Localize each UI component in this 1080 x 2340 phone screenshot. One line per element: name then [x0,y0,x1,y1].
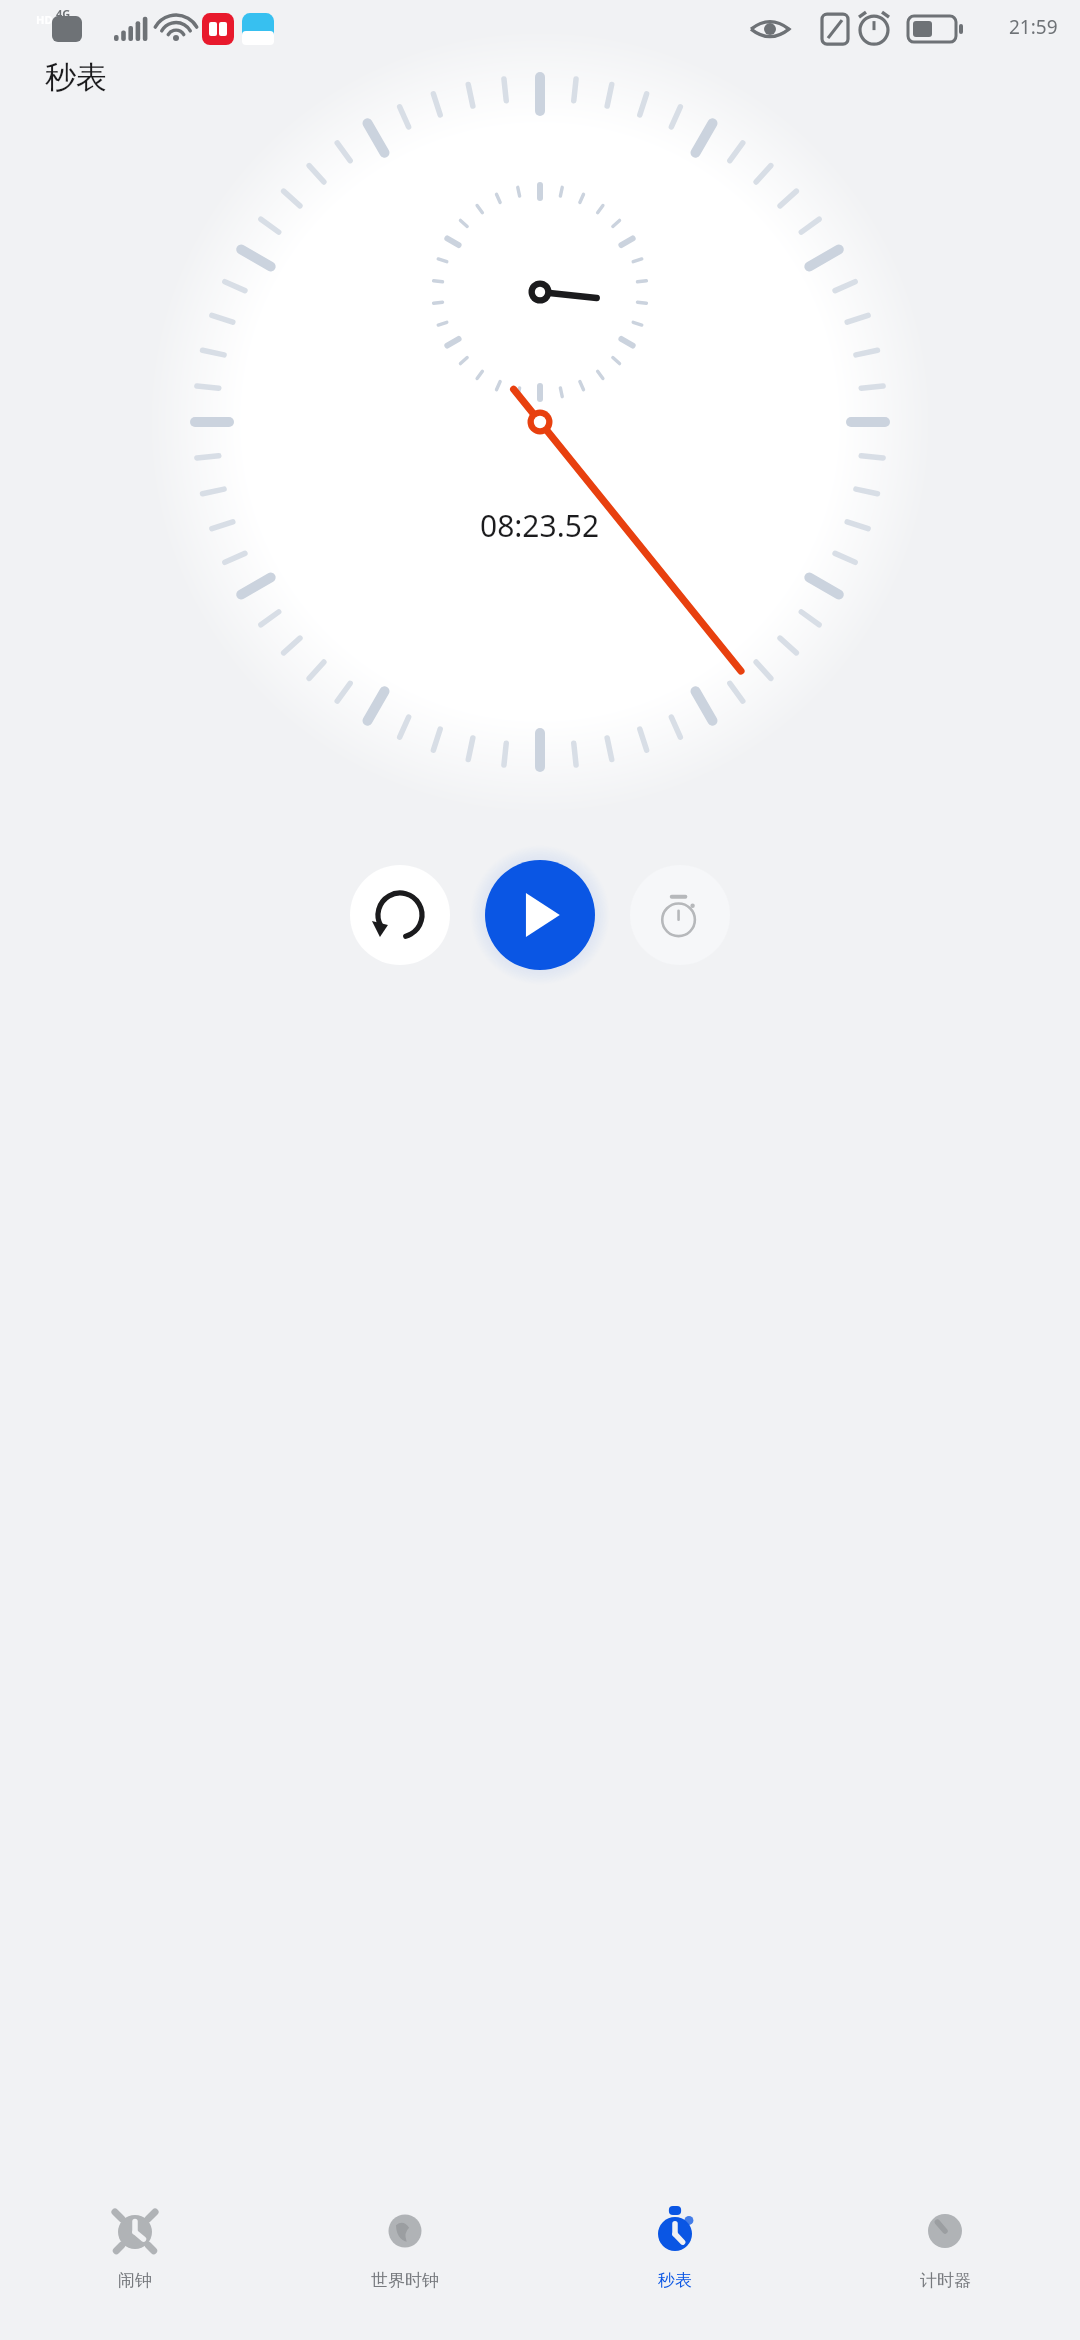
staticText: 秒表 [45,58,107,97]
staticText: 计时器 [920,2270,971,2291]
staticText: 4G [56,6,71,21]
staticText: 世界时钟 [371,2270,439,2291]
staticText: 08:23.52 [480,505,600,546]
button[interactable]: 闹钟 [0,2180,270,2340]
button[interactable]: Lap [630,865,730,965]
staticText: 秒表 [658,2270,692,2291]
button[interactable]: 计时器 [810,2180,1080,2340]
staticText: 21:59 [1009,14,1058,40]
staticText: 闹钟 [118,2270,152,2291]
button[interactable]: 世界时钟 [270,2180,540,2340]
button[interactable]: Reset [350,865,450,965]
staticText: HD [36,12,53,27]
button[interactable]: Start [485,860,595,970]
button[interactable]: 秒表 [540,2180,810,2340]
